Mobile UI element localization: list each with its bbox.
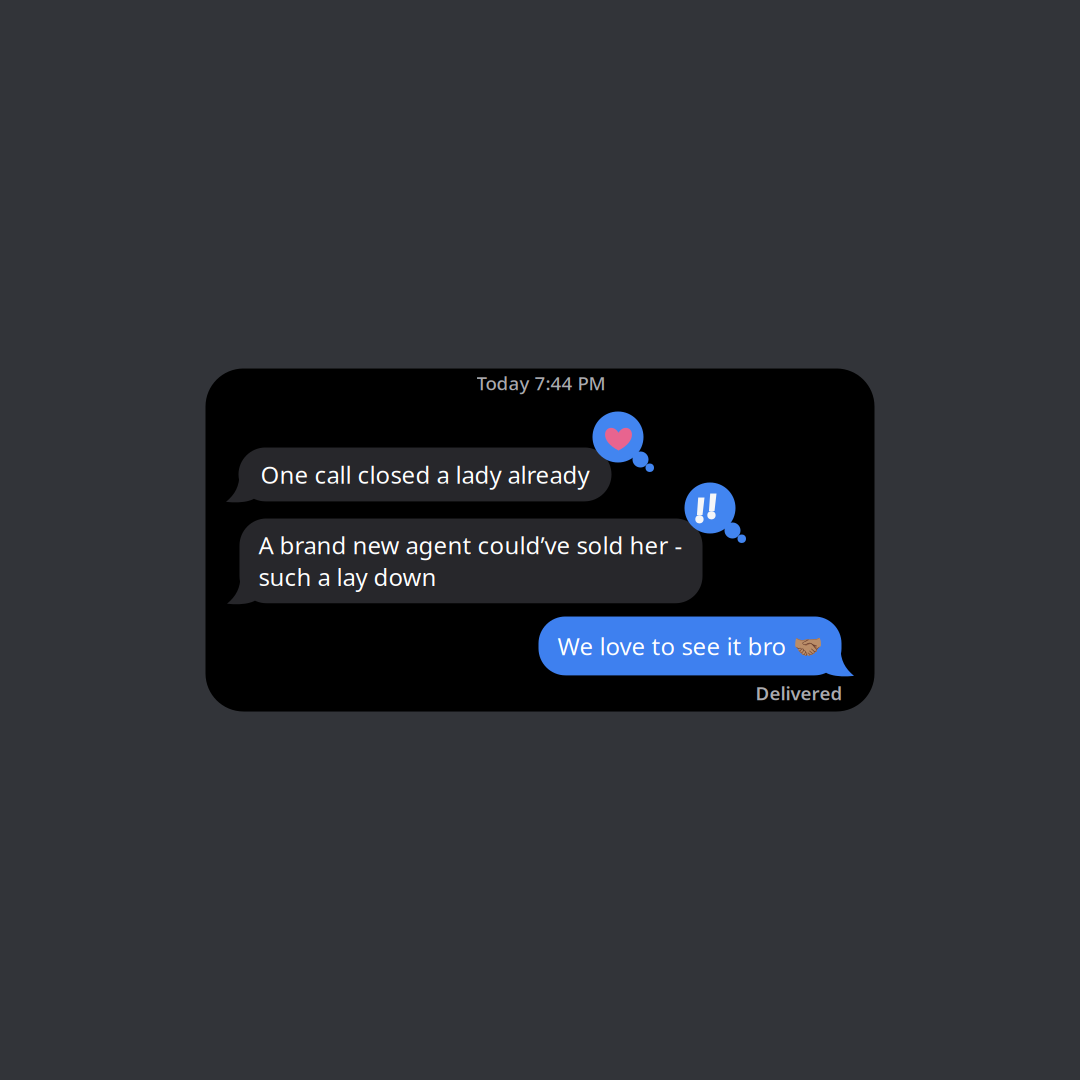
staticText: One call closed a lady already [260,458,589,490]
button[interactable]: Emphasised reaction [684,482,752,547]
button[interactable]: One call closed a lady already [225,447,611,501]
button[interactable]: We love to see it bro 🤝🏽 [538,616,854,675]
staticText: Today 7:44 PM [476,370,605,395]
button[interactable]: Loved reaction [592,411,660,476]
button[interactable]: A brand new agent could’ve sold her - su… [226,518,702,603]
staticText: A brand new agent could’ve sold her - su… [258,529,682,593]
staticText: We love to see it bro 🤝🏽 [557,630,822,662]
staticText: Delivered [755,680,842,705]
